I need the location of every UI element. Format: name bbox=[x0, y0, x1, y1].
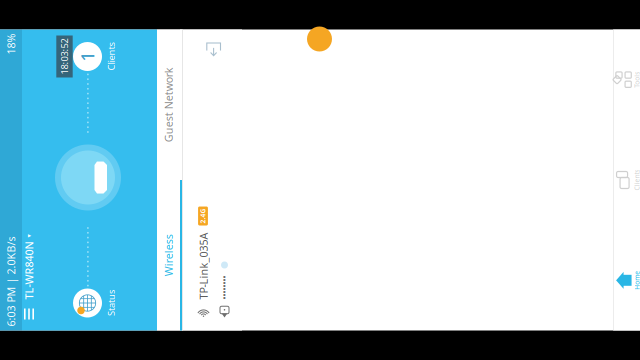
staticText: Guest Network bbox=[358, 21, 433, 36]
staticText: Wireless bbox=[224, 21, 266, 36]
button[interactable]: Guest Network bbox=[320, 17, 470, 42]
button[interactable]: Wireless bbox=[169, 17, 320, 42]
